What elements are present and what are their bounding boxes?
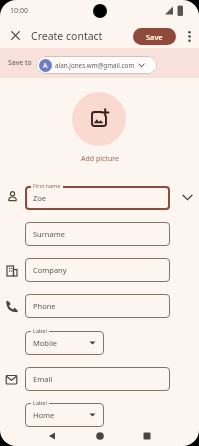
staticText: Save to <box>8 58 32 68</box>
button[interactable]: Company <box>25 258 170 282</box>
button[interactable]: Email <box>25 367 170 391</box>
button[interactable]: Zoe <box>25 186 170 210</box>
button[interactable]: Home <box>25 403 104 427</box>
staticText: A <box>43 61 48 71</box>
staticText: Label <box>33 399 47 406</box>
staticText: Add picture <box>81 154 119 164</box>
staticText: First name <box>33 182 61 189</box>
button[interactable]: A <box>36 56 157 74</box>
staticText: Label <box>33 327 47 334</box>
staticText: Save <box>146 32 163 42</box>
button[interactable]: Phone <box>25 294 170 318</box>
button[interactable]: Mobile <box>25 331 104 355</box>
staticText: Email <box>33 374 53 384</box>
staticText: 10:00 <box>10 6 28 16</box>
button[interactable]: Surname <box>25 222 170 246</box>
staticText: Create contact <box>31 29 103 43</box>
button[interactable] <box>72 92 126 146</box>
button[interactable] <box>46 430 58 442</box>
button[interactable] <box>186 30 193 43</box>
button[interactable] <box>11 31 20 40</box>
staticText: Zoe <box>33 193 47 203</box>
staticText: Surname <box>33 229 65 239</box>
staticText: Company <box>33 265 67 275</box>
button[interactable] <box>141 430 153 442</box>
staticText: Home <box>33 410 55 420</box>
staticText: Mobile <box>33 338 58 348</box>
button[interactable]: Save <box>133 28 176 45</box>
button[interactable] <box>94 430 106 442</box>
staticText: Phone <box>33 301 56 311</box>
staticText: alan.jones.wm@gmail.com <box>55 61 135 70</box>
button[interactable] <box>182 194 193 201</box>
